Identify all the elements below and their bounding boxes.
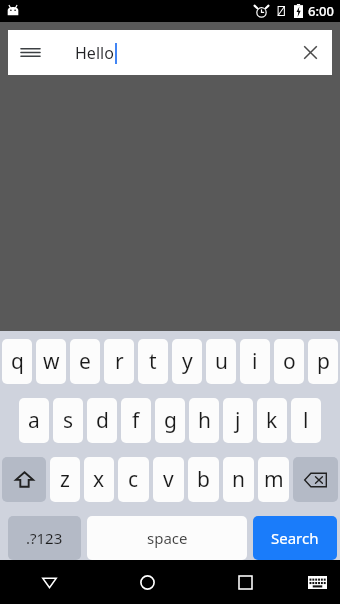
staticText: i — [252, 347, 258, 376]
button[interactable]: Menu — [8, 30, 52, 75]
button[interactable]: e — [70, 339, 100, 384]
button[interactable]: p — [308, 339, 338, 384]
staticText: 6:00 — [308, 2, 334, 20]
button[interactable]: m — [258, 457, 289, 502]
button[interactable]: i — [240, 339, 270, 384]
button[interactable]: s — [53, 398, 83, 443]
staticText: n — [232, 465, 245, 494]
staticText: u — [215, 347, 228, 376]
staticText: o — [283, 347, 296, 376]
button[interactable]: r — [104, 339, 134, 384]
button[interactable]: j — [223, 398, 253, 443]
button[interactable]: Clear — [288, 30, 332, 75]
staticText: c — [128, 465, 139, 494]
staticText: z — [60, 465, 70, 494]
button[interactable]: g — [155, 398, 185, 443]
staticText: x — [93, 465, 105, 494]
staticText: m — [264, 465, 284, 494]
button[interactable]: Shift — [2, 457, 46, 502]
button[interactable]: t — [138, 339, 168, 384]
staticText: b — [197, 465, 210, 494]
staticText: d — [96, 406, 109, 435]
staticText: e — [79, 347, 91, 376]
staticText: w — [43, 347, 60, 376]
staticText: .?123 — [26, 528, 63, 548]
staticText: space — [147, 528, 188, 548]
button[interactable]: f — [121, 398, 151, 443]
staticText: s — [63, 406, 74, 435]
button[interactable]: Menu — [8, 30, 332, 75]
button[interactable]: q — [2, 339, 32, 384]
button[interactable]: Back — [0, 560, 98, 604]
staticText: r — [115, 347, 124, 376]
staticText: Search — [271, 528, 319, 548]
staticText: j — [235, 406, 241, 435]
button[interactable]: k — [257, 398, 287, 443]
staticText: h — [198, 406, 211, 435]
button[interactable]: o — [274, 339, 304, 384]
button[interactable]: space — [87, 516, 247, 560]
button[interactable]: Backspace — [293, 457, 338, 502]
button[interactable]: Recents — [196, 560, 294, 604]
button[interactable]: w — [36, 339, 66, 384]
staticText: g — [164, 406, 177, 435]
staticText: f — [132, 406, 140, 435]
staticText: q — [11, 347, 24, 376]
button[interactable]: .?123 — [8, 516, 81, 560]
staticText: y — [182, 347, 193, 376]
button[interactable]: z — [50, 457, 80, 502]
staticText: l — [303, 406, 309, 435]
button[interactable]: u — [206, 339, 236, 384]
button[interactable]: Switch keyboard — [294, 560, 340, 604]
staticText: a — [28, 406, 40, 435]
staticText: p — [317, 347, 330, 376]
staticText: v — [163, 465, 174, 494]
staticText: t — [149, 347, 157, 376]
button[interactable]: b — [188, 457, 219, 502]
button[interactable]: v — [153, 457, 184, 502]
button[interactable]: Home — [98, 560, 196, 604]
staticText: k — [266, 406, 278, 435]
button[interactable]: x — [84, 457, 114, 502]
button[interactable]: d — [87, 398, 117, 443]
button[interactable]: n — [223, 457, 254, 502]
button[interactable]: y — [172, 339, 202, 384]
button[interactable]: a — [19, 398, 49, 443]
button[interactable]: h — [189, 398, 219, 443]
button[interactable]: c — [118, 457, 149, 502]
button[interactable]: Search — [253, 516, 337, 560]
staticText: Hello — [75, 42, 114, 64]
button[interactable]: l — [291, 398, 321, 443]
